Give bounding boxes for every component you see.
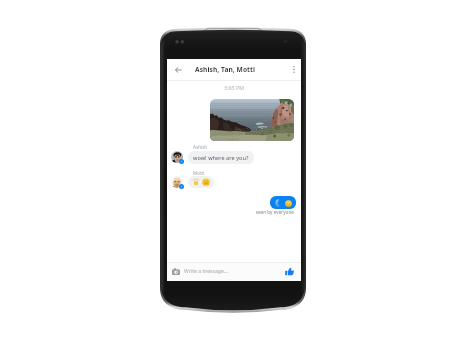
button[interactable] [188, 176, 214, 188]
staticText: seen by everyone [167, 209, 294, 215]
button[interactable]: Send a like [283, 265, 296, 278]
staticText: Write a message... [184, 268, 229, 275]
staticText: Motti [193, 170, 205, 176]
staticText: Ashish, Tan, Motti [195, 65, 256, 74]
button[interactable]: Back [167, 59, 195, 80]
button[interactable]: wow! where are you? [188, 151, 254, 164]
button[interactable] [210, 99, 294, 141]
staticText: 3:05 PM [167, 84, 301, 91]
button[interactable] [270, 196, 296, 209]
button[interactable]: More options [287, 59, 301, 80]
staticText: Ashish [193, 144, 208, 150]
button[interactable]: Open camera [170, 265, 182, 277]
staticText: wow! where are you? [193, 154, 249, 162]
